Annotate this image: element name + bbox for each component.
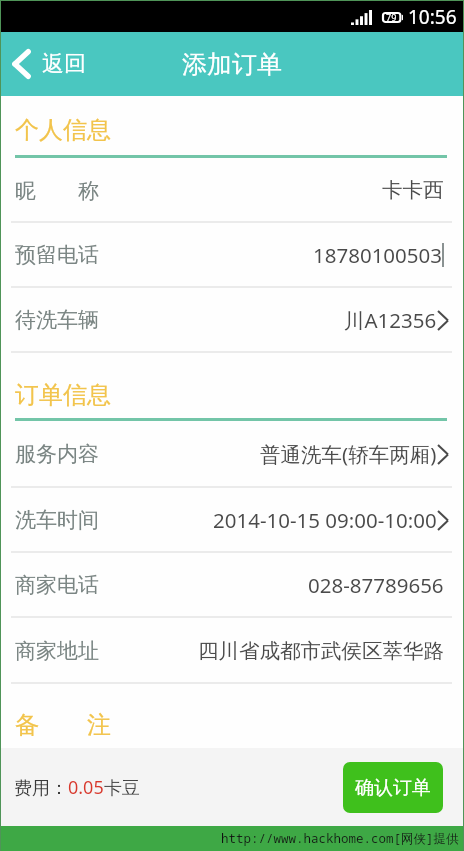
button[interactable]: 洗车时间 [1,488,463,553]
button[interactable]: 确认订单 [343,762,443,813]
staticText: 商家电话 [15,572,99,598]
staticText: 返回 [42,50,86,78]
button[interactable]: 昵 称 [1,158,463,223]
staticText: 洗车时间 [15,507,99,533]
button[interactable]: 预留电话 [1,223,463,288]
button[interactable]: 服务内容 [1,421,463,488]
staticText: 川A12356 [344,306,437,334]
staticText: 个人信息 [15,115,111,145]
staticText: 18780100503 [313,241,442,269]
staticText: 确认订单 [355,776,431,800]
staticText: 普通洗车(轿车两厢) [260,440,437,468]
staticText: http://www.hackhome.com[网侠]提供 [221,830,459,847]
staticText: 028-87789656 [308,571,444,599]
staticText: 2014-10-15 09:00-10:00 [213,506,437,534]
staticText: 10:56 [408,4,457,30]
staticText: 待洗车辆 [15,307,99,333]
staticText: 79 [386,11,397,23]
button[interactable]: 商家地址 [1,618,463,684]
staticText: 服务内容 [15,441,99,467]
button[interactable]: 待洗车辆 [1,288,463,353]
staticText: 备 注 [15,707,111,740]
staticText: 费用：0.05卡豆 [14,775,140,800]
staticText: 添加订单 [182,49,282,80]
staticText: 四川省成都市武侯区萃华路 [198,638,444,664]
staticText: 昵 称 [15,176,99,205]
button[interactable]: 商家电话 [1,553,463,618]
button[interactable]: 返回 [1,39,100,89]
staticText: 卡卡西 [382,177,444,203]
staticText: 预留电话 [15,242,99,268]
staticText: 订单信息 [15,380,111,410]
staticText: 商家地址 [15,638,99,664]
